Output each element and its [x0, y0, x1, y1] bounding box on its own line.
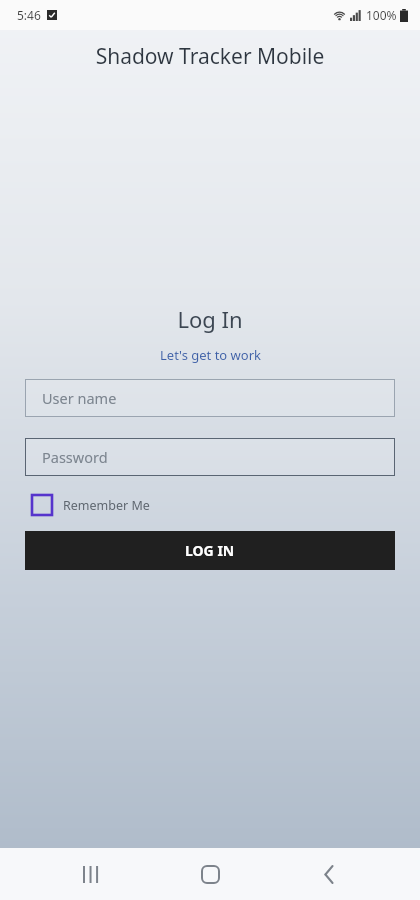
button[interactable]: Recent apps — [63, 848, 119, 900]
staticText: 5:46 — [17, 7, 41, 23]
staticText: User name — [42, 388, 117, 408]
staticText: Let's get to work — [160, 346, 261, 364]
staticText: Remember Me — [63, 497, 150, 514]
button[interactable]: Home — [182, 848, 238, 900]
button[interactable]: LOG IN — [25, 531, 395, 570]
button[interactable]: Remember Me — [25, 495, 395, 515]
staticText: Log In — [177, 304, 243, 334]
staticText: Password — [42, 447, 108, 467]
staticText: 100% — [366, 7, 397, 23]
button[interactable]: Password — [25, 438, 395, 476]
button[interactable]: User name — [25, 379, 395, 417]
staticText: LOG IN — [185, 541, 235, 560]
staticText: Shadow Tracker Mobile — [0, 42, 420, 71]
button[interactable]: Back — [301, 848, 357, 900]
